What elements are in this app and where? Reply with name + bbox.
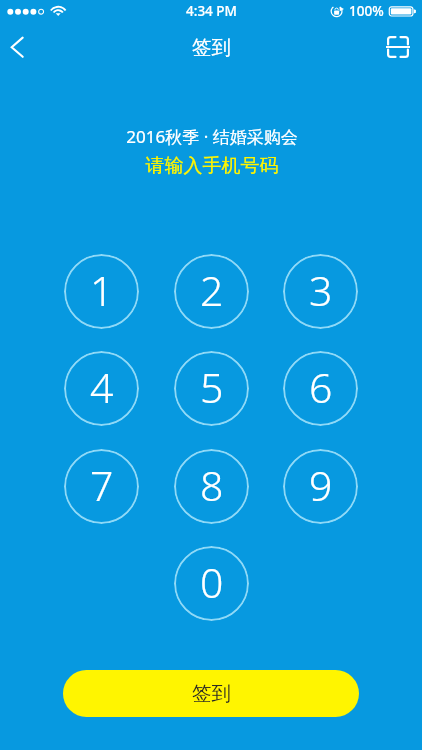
staticText: 签到 (192, 35, 231, 60)
staticText: 请输入手机号码 (1, 154, 422, 178)
button[interactable]: 2 (174, 254, 249, 329)
staticText: 4 (90, 359, 114, 415)
staticText: 1 (90, 262, 114, 318)
staticText: 9 (309, 457, 333, 513)
staticText: 5 (200, 359, 224, 415)
staticText: 7 (90, 457, 114, 513)
button[interactable]: 9 (283, 449, 358, 524)
button[interactable]: Back (0, 23, 36, 73)
staticText: 3 (309, 262, 333, 318)
staticText: 6 (309, 359, 333, 415)
button[interactable]: 0 (174, 546, 249, 621)
button[interactable]: 4 (64, 351, 139, 426)
button[interactable]: Scan (374, 23, 422, 71)
button[interactable]: 签到 (63, 670, 359, 717)
staticText: 100% (349, 2, 384, 20)
staticText: 4:34 PM (186, 2, 237, 20)
staticText: 2 (200, 262, 224, 318)
staticText: 签到 (192, 681, 231, 706)
button[interactable]: 5 (174, 351, 249, 426)
button[interactable]: 7 (64, 449, 139, 524)
staticText: 0 (200, 554, 224, 610)
button[interactable]: 6 (283, 351, 358, 426)
staticText: 8 (200, 457, 224, 513)
button[interactable]: 1 (64, 254, 139, 329)
staticText: 2016秋季 · 结婚采购会 (1, 125, 422, 148)
button[interactable]: 3 (283, 254, 358, 329)
button[interactable]: 8 (174, 449, 249, 524)
